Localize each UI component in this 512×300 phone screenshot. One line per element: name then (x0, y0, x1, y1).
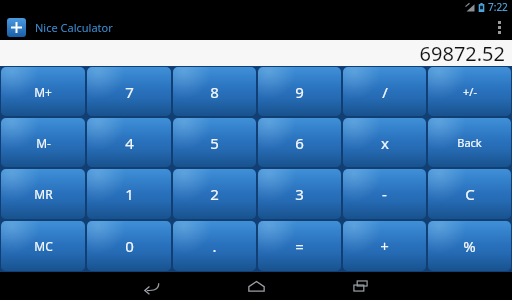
staticText: 4 (125, 133, 134, 153)
button[interactable]: 4 (87, 118, 171, 167)
staticText: +/- (463, 84, 477, 99)
button[interactable]: 1 (87, 169, 171, 219)
button[interactable]: Recent apps (331, 272, 389, 300)
staticText: 9 (295, 82, 304, 102)
staticText: % (463, 236, 476, 256)
button[interactable]: . (173, 221, 256, 271)
staticText: Nice Calculator (35, 20, 113, 35)
staticText: Back (457, 135, 482, 150)
staticText: x (381, 133, 389, 153)
button[interactable]: 0 (87, 221, 171, 271)
staticText: 69872.52 (419, 40, 505, 66)
staticText: MR (34, 186, 53, 202)
button[interactable]: App icon (7, 18, 26, 37)
staticText: 2 (210, 184, 219, 204)
staticText: 7 (125, 82, 134, 102)
button[interactable]: Home (227, 272, 285, 300)
button[interactable]: M- (1, 118, 85, 167)
button[interactable]: x (343, 118, 426, 167)
button[interactable]: 3 (258, 169, 341, 219)
button[interactable]: - (343, 169, 426, 219)
staticText: 8 (210, 82, 219, 102)
staticText: 6 (295, 133, 304, 153)
button[interactable]: 8 (173, 67, 256, 116)
staticText: . (212, 236, 217, 256)
button[interactable]: +/- (428, 67, 511, 116)
staticText: / (382, 82, 388, 102)
staticText: + (380, 236, 389, 256)
button[interactable]: MC (1, 221, 85, 271)
button[interactable]: More options (486, 14, 512, 40)
staticText: 7:22 (488, 0, 508, 14)
button[interactable]: % (428, 221, 511, 271)
button[interactable]: = (258, 221, 341, 271)
button[interactable]: M+ (1, 67, 85, 116)
button[interactable]: 9 (258, 67, 341, 116)
button[interactable]: MR (1, 169, 85, 219)
staticText: M- (36, 135, 51, 151)
button[interactable]: 5 (173, 118, 256, 167)
staticText: 3 (295, 184, 304, 204)
staticText: = (295, 236, 304, 256)
button[interactable]: Back (123, 272, 181, 300)
button[interactable]: 7 (87, 67, 171, 116)
button[interactable]: 6 (258, 118, 341, 167)
button[interactable]: / (343, 67, 426, 116)
staticText: M+ (34, 84, 52, 100)
staticText: C (465, 184, 475, 204)
staticText: MC (34, 238, 53, 254)
button[interactable]: Back (428, 118, 511, 167)
staticText: - (382, 184, 387, 204)
button[interactable]: 2 (173, 169, 256, 219)
button[interactable]: C (428, 169, 511, 219)
staticText: 0 (125, 236, 134, 256)
staticText: 5 (210, 133, 219, 153)
staticText: 1 (125, 184, 134, 204)
button[interactable]: + (343, 221, 426, 271)
